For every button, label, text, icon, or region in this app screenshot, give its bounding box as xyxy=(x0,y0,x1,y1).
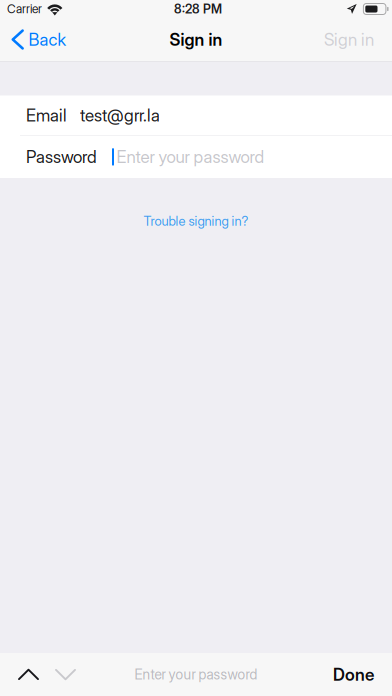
button[interactable]: Back xyxy=(0,18,77,61)
button[interactable]: Trouble signing in? xyxy=(0,210,392,232)
button[interactable]: Sign in xyxy=(310,18,392,61)
button[interactable]: Password xyxy=(0,136,392,178)
staticText: test@grr.la xyxy=(80,105,160,126)
button[interactable]: Next field xyxy=(55,653,76,696)
staticText: Back xyxy=(28,29,66,50)
staticText: 8:28 PM xyxy=(174,1,222,16)
button[interactable]: Done xyxy=(315,653,392,696)
staticText: Trouble signing in? xyxy=(143,213,248,229)
staticText: Sign in xyxy=(169,29,222,50)
button[interactable]: Email xyxy=(0,95,392,135)
staticText: Carrier xyxy=(7,2,42,16)
staticText: Password xyxy=(26,147,97,167)
staticText: Sign in xyxy=(324,29,374,50)
staticText: Done xyxy=(333,664,374,685)
staticText: Email xyxy=(26,105,67,126)
button[interactable]: Previous field xyxy=(0,653,55,696)
staticText: Enter your password xyxy=(116,147,264,167)
staticText: Enter your password xyxy=(134,666,257,683)
